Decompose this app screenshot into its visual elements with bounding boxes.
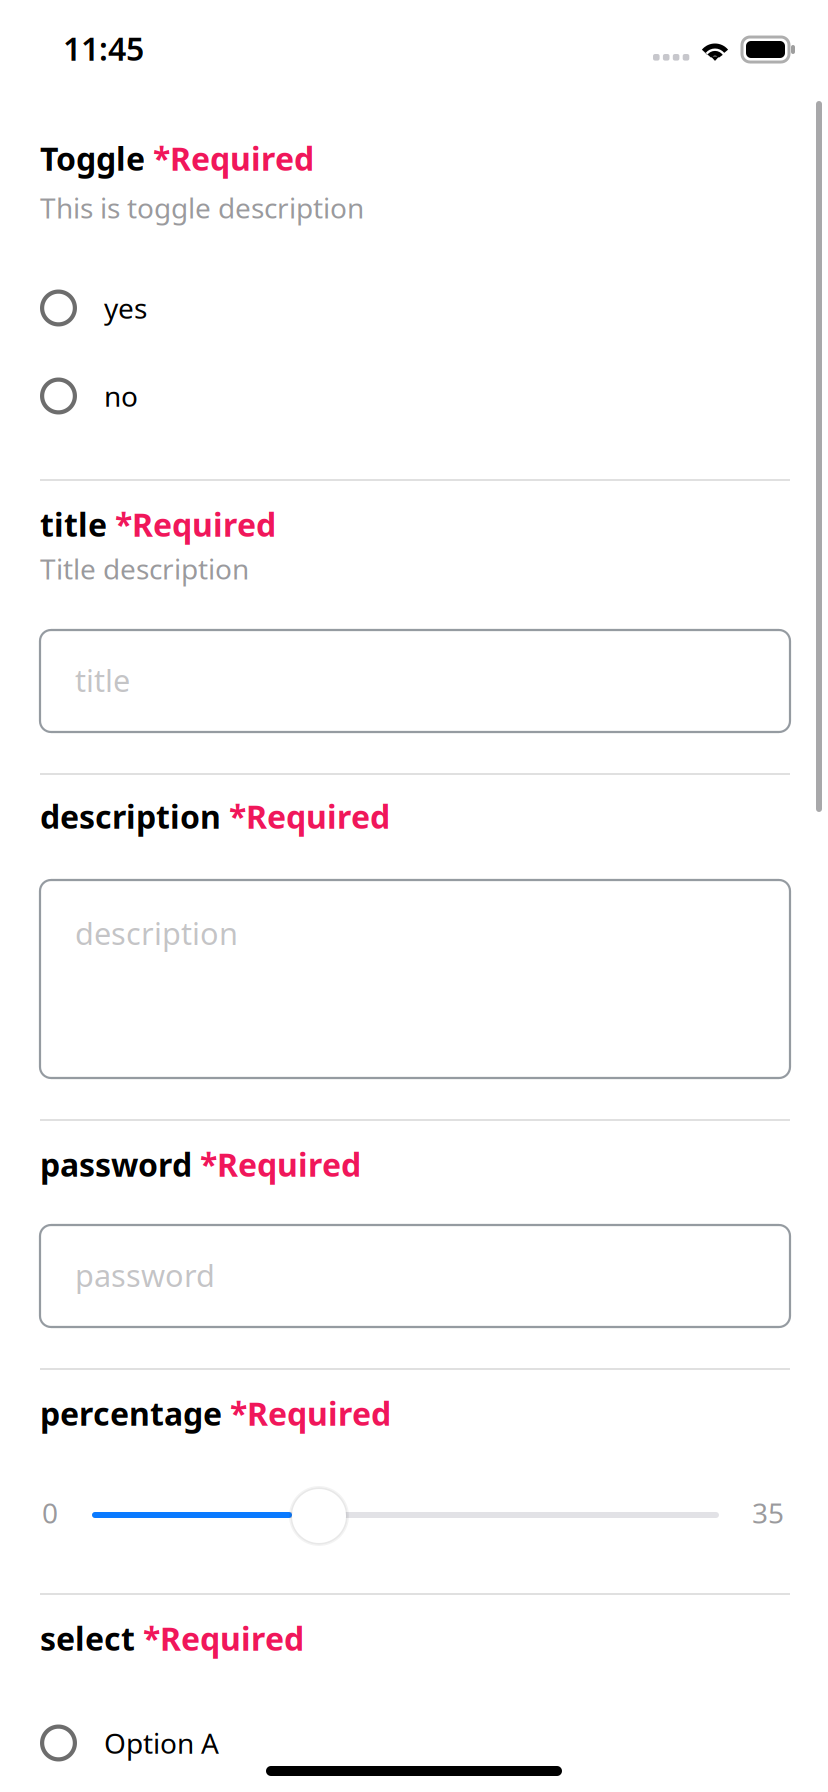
staticText: *Required	[145, 137, 314, 179]
staticText: percentage	[40, 1392, 222, 1434]
staticText: description	[75, 913, 238, 953]
staticText: *Required	[107, 503, 276, 545]
button[interactable]: title	[40, 630, 790, 732]
staticText: Toggle	[40, 137, 145, 179]
staticText: title	[40, 503, 107, 545]
staticText: *Required	[221, 795, 390, 837]
staticText: 0	[42, 1494, 58, 1531]
staticText: 35	[752, 1494, 784, 1531]
staticText: This is toggle description	[40, 189, 364, 226]
button[interactable]: no	[40, 360, 790, 432]
staticText: Title description	[40, 550, 249, 587]
staticText: title	[75, 660, 130, 700]
staticText: *Required	[192, 1143, 361, 1185]
staticText: password	[75, 1255, 215, 1295]
staticText: description	[40, 795, 221, 837]
staticText: select	[40, 1617, 135, 1659]
button[interactable]: Option A	[40, 1707, 790, 1779]
button[interactable]: description	[40, 880, 790, 1078]
staticText: Option A	[104, 1724, 219, 1762]
button[interactable]: password	[40, 1225, 790, 1327]
button[interactable]: yes	[40, 272, 790, 344]
staticText: no	[104, 377, 138, 415]
staticText: password	[40, 1143, 192, 1185]
staticText: yes	[104, 289, 147, 327]
staticText: 11:45	[63, 27, 144, 69]
staticText: *Required	[222, 1392, 391, 1434]
staticText: *Required	[135, 1617, 304, 1659]
